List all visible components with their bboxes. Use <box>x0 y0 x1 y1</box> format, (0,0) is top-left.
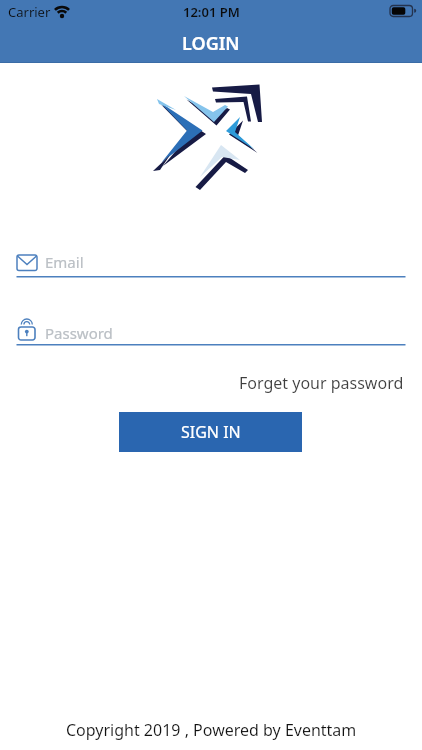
staticText: Carrier <box>8 3 51 19</box>
staticText: Password <box>45 323 113 343</box>
button[interactable]: SIGN IN <box>119 412 302 452</box>
staticText: SIGN IN <box>181 421 241 443</box>
button[interactable]: Password <box>16 315 406 347</box>
staticText: LOGIN <box>182 31 240 56</box>
staticText: Copyright 2019 , Powered by Eventtam <box>66 719 357 741</box>
button[interactable]: Email <box>16 248 406 278</box>
button[interactable]: Forget your password <box>144 371 404 395</box>
staticText: Email <box>45 252 84 272</box>
staticText: 12:01 PM <box>183 3 240 19</box>
staticText: Forget your password <box>239 372 404 394</box>
